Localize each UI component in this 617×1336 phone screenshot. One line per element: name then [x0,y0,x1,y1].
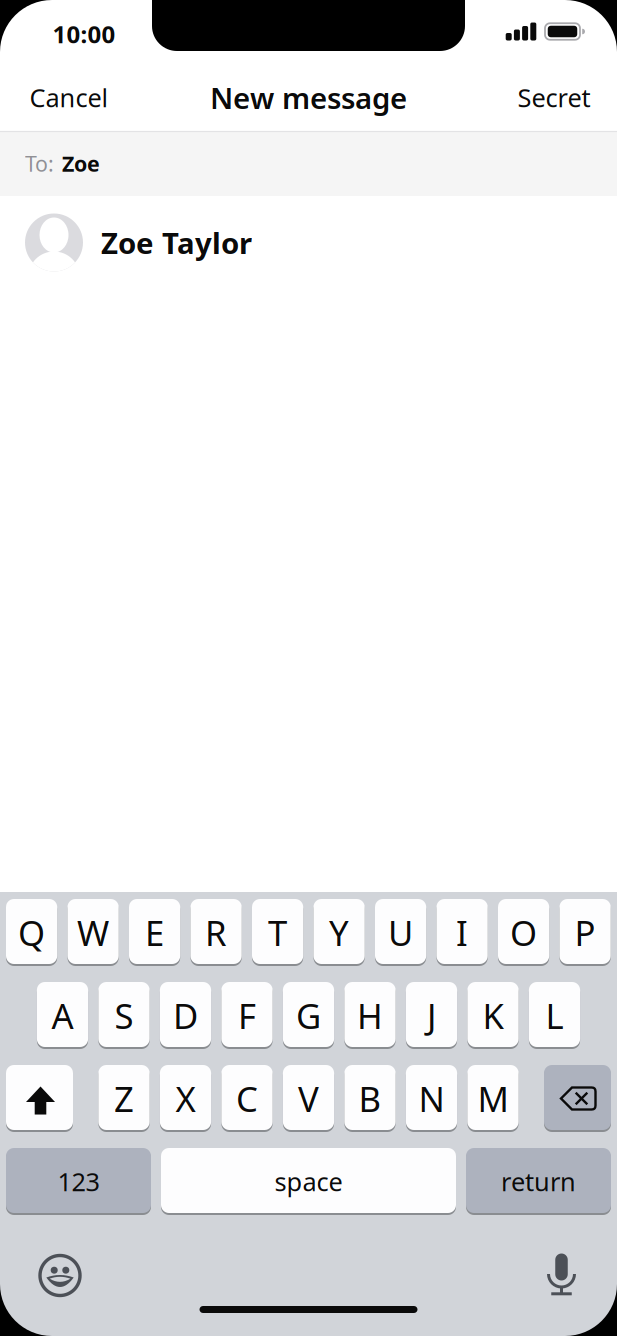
staticText: X [175,1075,195,1121]
staticText: K [482,992,503,1038]
button[interactable]: Cancel [29,81,108,114]
button[interactable]: M [467,1065,519,1132]
staticText: C [236,1075,258,1121]
button[interactable]: V [283,1065,334,1132]
staticText: Zoe Taylor [101,223,252,262]
staticText: P [575,909,596,955]
button[interactable]: Emoji [36,1251,84,1299]
button[interactable]: P [559,899,611,966]
button[interactable]: D [160,982,211,1049]
button[interactable]: Zoe Taylor [25,210,617,274]
staticText: 10:00 [52,18,115,50]
button[interactable]: Delete [544,1065,611,1132]
staticText: U [388,909,413,955]
staticText: A [51,992,73,1038]
staticText: W [77,909,109,955]
button[interactable]: N [406,1065,457,1132]
staticText: V [298,1075,319,1121]
button[interactable]: B [344,1065,396,1132]
button[interactable]: U [375,899,426,966]
button[interactable]: Z [98,1065,150,1132]
button[interactable]: K [467,982,519,1049]
staticText: L [545,992,563,1038]
staticText: space [274,1165,342,1198]
staticText: E [145,909,164,955]
button[interactable]: S [98,982,150,1049]
button[interactable]: E [129,899,180,966]
button[interactable]: Shift [6,1065,73,1132]
staticText: Z [114,1075,134,1121]
button[interactable]: W [67,899,119,966]
button[interactable]: Y [313,899,365,966]
button[interactable]: R [190,899,242,966]
button[interactable]: space [161,1148,456,1215]
staticText: return [501,1165,576,1198]
staticText: I [456,909,468,955]
button[interactable]: I [436,899,488,966]
staticText: B [358,1075,381,1121]
button[interactable]: A [37,982,88,1049]
button[interactable]: T [252,899,303,966]
button[interactable]: To: Zoe [25,131,617,196]
staticText: To: [25,149,54,178]
staticText: Zoe [62,149,100,178]
staticText: J [427,992,436,1038]
button[interactable]: L [529,982,580,1049]
button[interactable]: X [160,1065,211,1132]
staticText: S [114,992,133,1038]
button[interactable]: F [221,982,273,1049]
staticText: Y [329,909,349,955]
staticText: N [418,1075,444,1121]
staticText: H [357,992,383,1038]
staticText: T [268,909,287,955]
button[interactable]: return [466,1148,611,1215]
button[interactable]: J [406,982,457,1049]
staticText: Secret [517,81,590,114]
staticText: G [296,992,321,1038]
button[interactable]: C [221,1065,273,1132]
button[interactable]: Dictation [541,1251,581,1297]
button[interactable]: G [283,982,334,1049]
staticText: Cancel [29,81,108,114]
staticText: D [173,992,198,1038]
button[interactable]: Q [6,899,57,966]
staticText: O [510,909,537,955]
staticText: Q [18,909,45,955]
button[interactable]: H [344,982,396,1049]
staticText: R [205,909,227,955]
button[interactable]: 123 [6,1148,151,1215]
staticText: 123 [57,1165,99,1198]
staticText: New message [210,78,407,117]
button[interactable]: Secret [517,81,590,114]
staticText: M [477,1075,508,1121]
staticText: F [238,992,256,1038]
button[interactable]: O [498,899,549,966]
